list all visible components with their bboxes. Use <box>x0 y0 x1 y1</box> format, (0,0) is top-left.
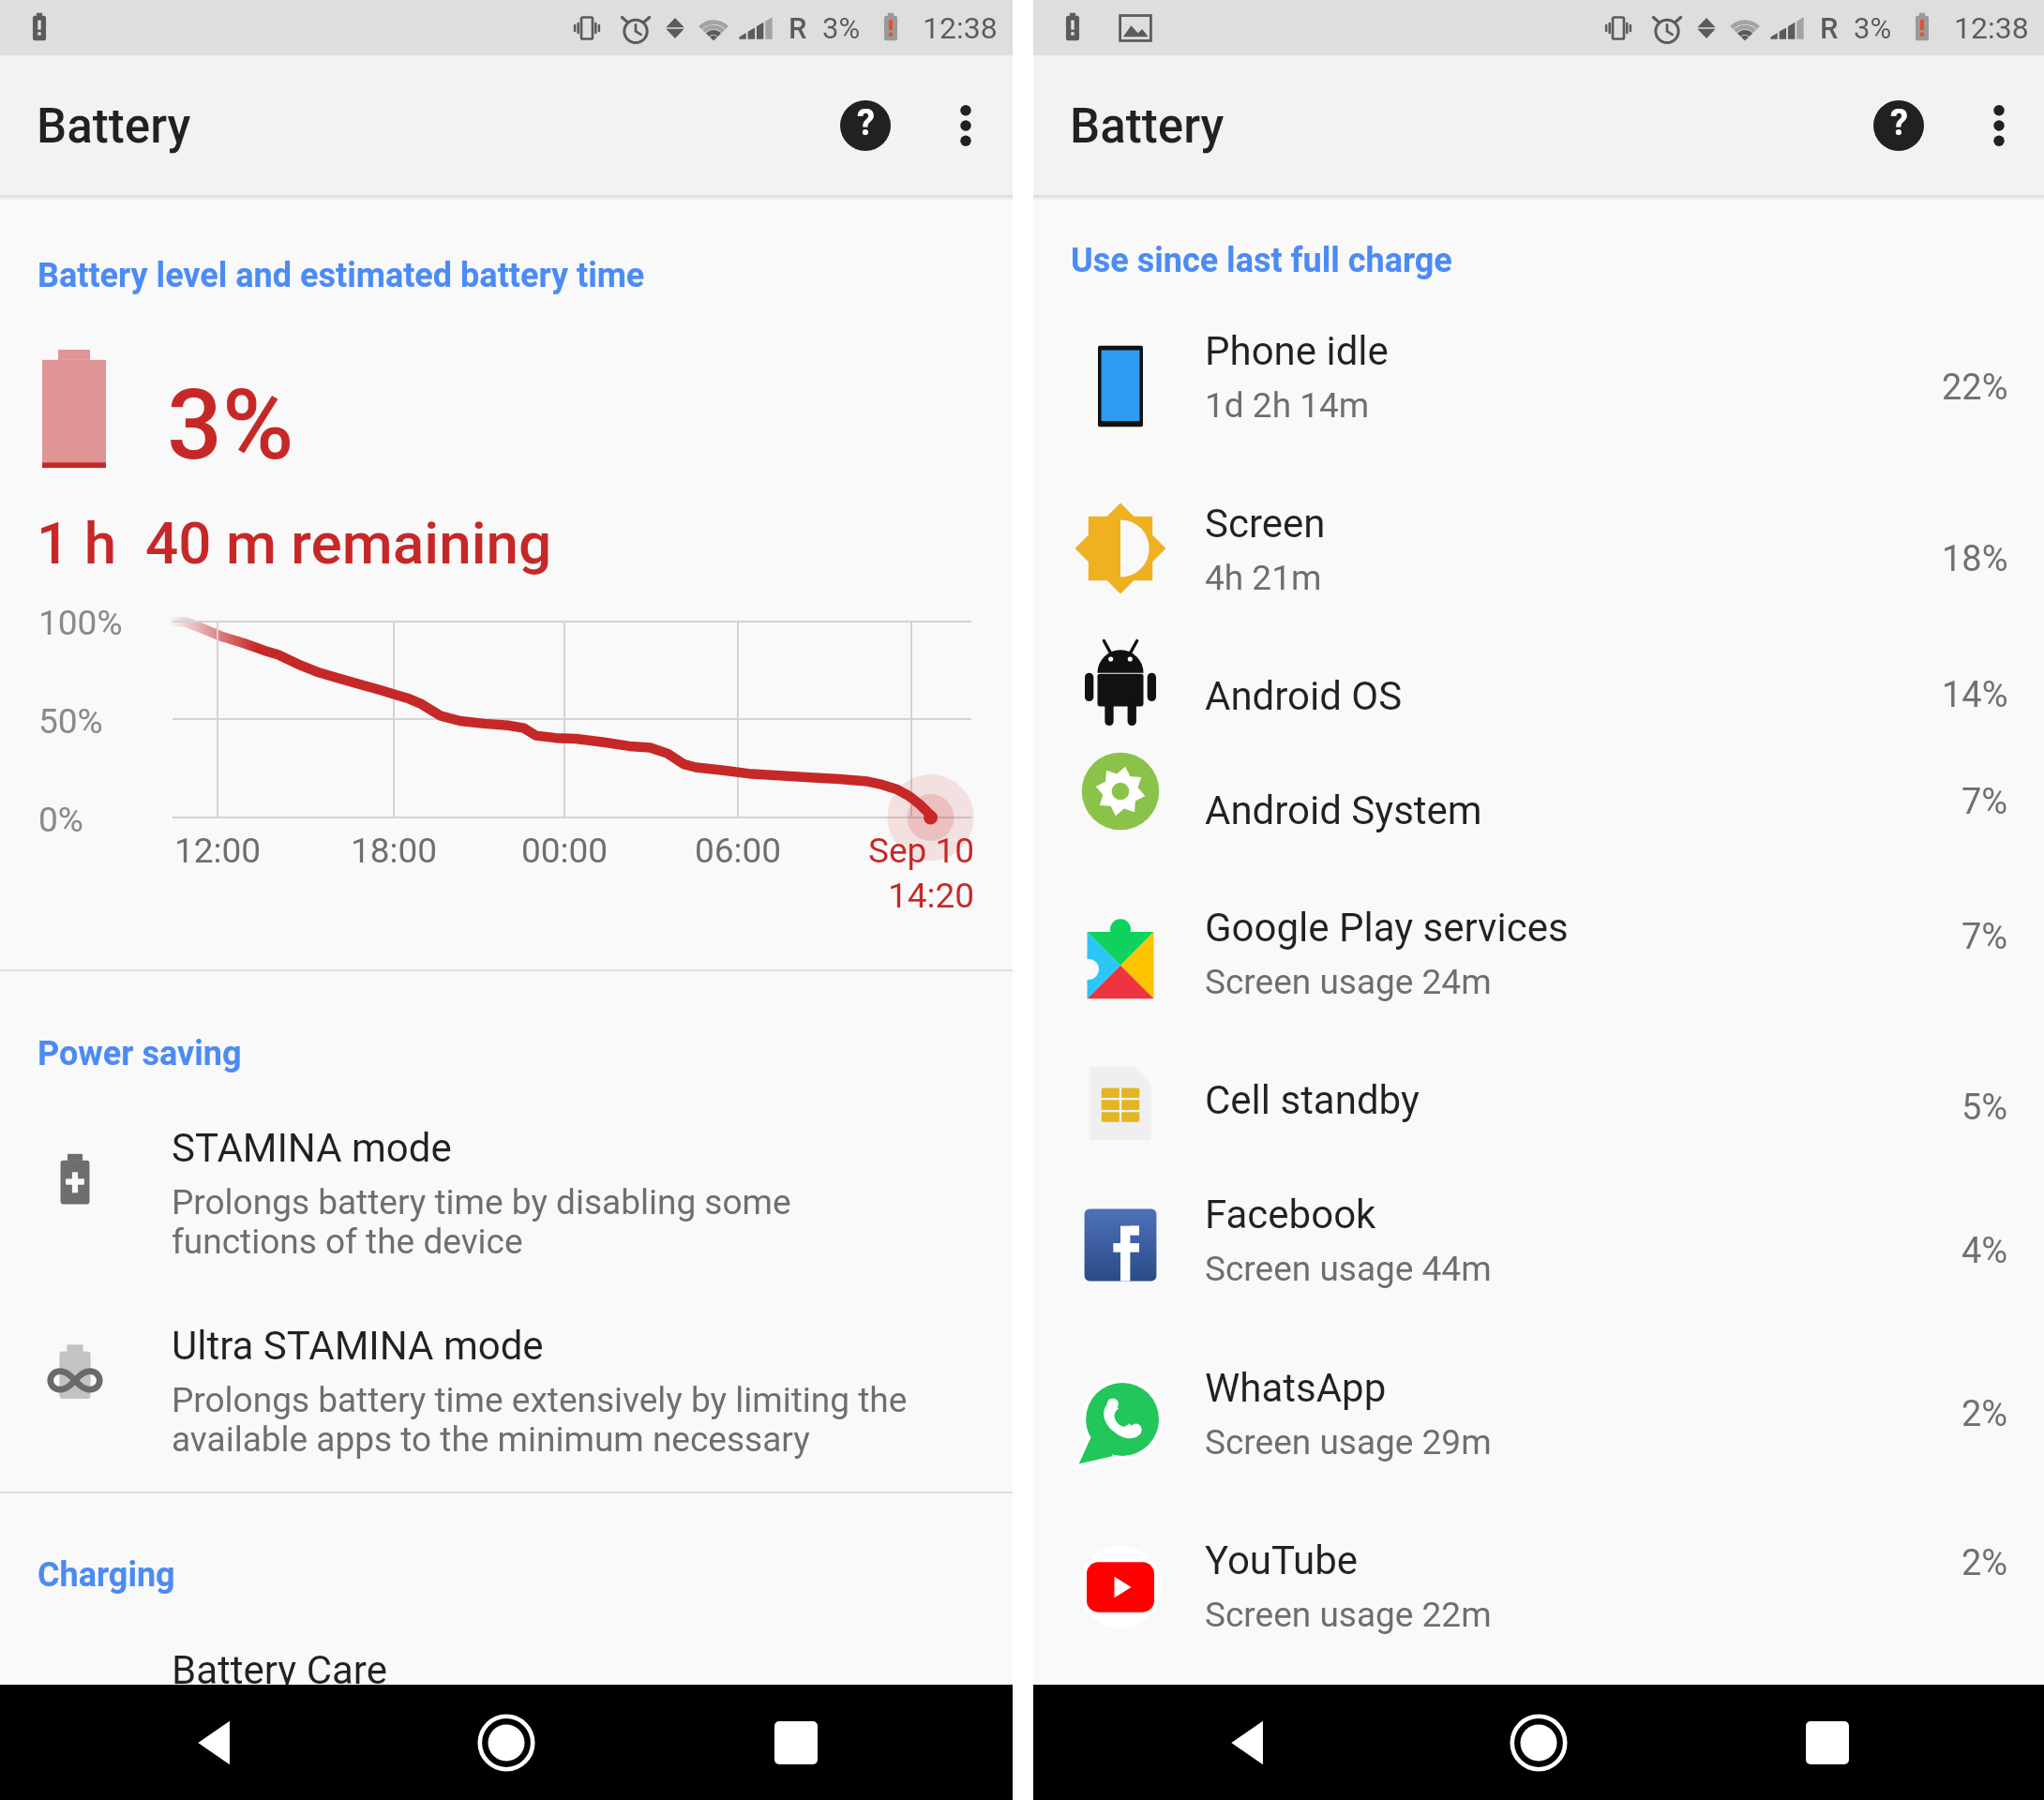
staticText: 1 h 40 m remaining <box>37 509 552 577</box>
staticText: functions of the device <box>172 1222 523 1262</box>
staticText: 18:00 <box>351 831 438 871</box>
staticText: Sep 10 <box>868 831 975 871</box>
button[interactable]: Back <box>160 1685 273 1800</box>
button[interactable]: Google Play services <box>1033 886 2044 1028</box>
staticText: Google Play services <box>1205 905 1569 951</box>
button[interactable]: Facebook <box>1033 1174 2044 1316</box>
staticText: Battery level and estimated battery time <box>38 256 645 295</box>
staticText: 00:00 <box>521 831 609 871</box>
staticText: WhatsApp <box>1205 1365 1387 1411</box>
button[interactable]: STAMINA mode <box>0 1087 1013 1275</box>
staticText: R <box>789 11 807 45</box>
staticText: Android OS <box>1205 673 1403 719</box>
staticText: STAMINA mode <box>172 1125 452 1171</box>
staticText: 7% <box>1961 781 2008 823</box>
staticText: ? <box>1890 102 1908 144</box>
staticText: available apps to the minimum necessary <box>172 1419 810 1460</box>
button[interactable]: More options <box>1952 55 2044 195</box>
staticText: Charging <box>38 1555 175 1595</box>
button[interactable]: Home <box>1482 1685 1595 1800</box>
button[interactable]: YouTube <box>1033 1516 2044 1658</box>
staticText: Power saving <box>38 1034 242 1073</box>
staticText: 2% <box>1961 1393 2008 1435</box>
staticText: 7% <box>1961 916 2008 958</box>
button[interactable]: Help <box>1845 55 1952 195</box>
button[interactable]: Battery Care <box>0 1612 1013 1744</box>
staticText: 4% <box>1961 1230 2008 1272</box>
staticText: Screen usage 44m <box>1205 1249 1492 1289</box>
button[interactable]: Recents <box>1771 1685 1884 1800</box>
staticText: Battery <box>1070 98 1225 155</box>
staticText: 1d 2h 14m <box>1205 385 1370 426</box>
button[interactable]: Screen <box>1033 477 2044 620</box>
staticText: 50% <box>38 701 103 742</box>
staticText: 100% <box>38 603 123 643</box>
button[interactable]: Android OS <box>1033 612 2044 755</box>
staticText: 0% <box>38 800 83 840</box>
staticText: 18% <box>1942 538 2008 580</box>
staticText: Cell standby <box>1205 1077 1420 1123</box>
button[interactable]: Ultra STAMINA mode <box>0 1284 1013 1481</box>
staticText: Screen usage 24m <box>1205 962 1492 1002</box>
button[interactable]: WhatsApp <box>1033 1350 2044 1492</box>
staticText: 22% <box>1942 367 2008 409</box>
staticText: 12:38 <box>1954 10 2029 46</box>
staticText: ? <box>857 102 875 144</box>
button[interactable]: Phone idle <box>1033 315 2044 457</box>
button[interactable]: Back <box>1194 1685 1306 1800</box>
staticText: 12:38 <box>923 10 998 46</box>
staticText: Facebook <box>1205 1192 1376 1237</box>
staticText: 3% <box>167 368 294 483</box>
button[interactable]: More options <box>919 55 1013 195</box>
button[interactable]: Cell standby <box>1033 1032 2044 1175</box>
staticText: 06:00 <box>695 831 782 871</box>
staticText: Prolongs battery time by disabling some <box>172 1182 791 1222</box>
staticText: Prolongs battery time extensively by lim… <box>172 1380 908 1420</box>
staticText: Battery <box>37 98 191 155</box>
button[interactable]: Home <box>450 1685 563 1800</box>
staticText: Ultra STAMINA mode <box>172 1323 544 1369</box>
staticText: R <box>1820 11 1839 45</box>
staticText: 14% <box>1942 674 2008 716</box>
staticText: Battery Care <box>172 1647 387 1693</box>
button[interactable]: Recents <box>740 1685 852 1800</box>
staticText: Phone idle <box>1205 328 1389 374</box>
staticText: 14:20 <box>888 876 975 916</box>
staticText: Screen usage 29m <box>1205 1422 1492 1462</box>
button[interactable]: Help <box>812 55 919 195</box>
staticText: YouTube <box>1205 1537 1359 1583</box>
staticText: 12:00 <box>174 831 262 871</box>
staticText: Screen usage 22m <box>1205 1595 1492 1635</box>
staticText: 3% <box>1854 11 1892 45</box>
staticText: 3% <box>822 11 861 45</box>
staticText: Android System <box>1205 787 1482 833</box>
staticText: 2% <box>1961 1542 2008 1584</box>
staticText: Use since last full charge <box>1071 241 1452 280</box>
staticText: Screen <box>1205 501 1326 547</box>
button[interactable]: Android System <box>1033 720 2044 862</box>
staticText: 4h 21m <box>1205 558 1322 598</box>
staticText: 5% <box>1961 1087 2008 1129</box>
